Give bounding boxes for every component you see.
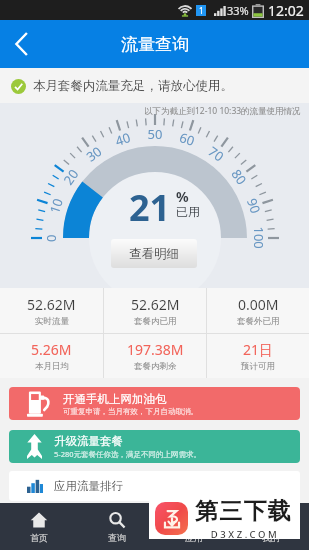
staticText: 升级流量套餐: [54, 434, 123, 448]
staticText: 21日: [243, 340, 274, 359]
staticText: 5-280元套餐任你选，满足不同的上网需求。: [54, 449, 202, 459]
staticText: 197.38M: [127, 340, 184, 359]
staticText: 套餐内已用: [134, 316, 177, 327]
staticText: 实时流量: [35, 316, 69, 327]
staticText: D3XZ.COM: [195, 528, 295, 539]
staticText: 流量查询: [121, 34, 189, 55]
staticText: 0.00M: [238, 295, 279, 314]
staticText: 应用: [185, 532, 203, 543]
staticText: 我的: [262, 532, 280, 543]
staticText: 12:02: [268, 1, 304, 20]
button[interactable]: Back: [0, 22, 44, 66]
staticText: 21: [129, 183, 171, 232]
staticText: 应用流量排行: [54, 479, 123, 493]
staticText: 33%: [227, 3, 249, 18]
button[interactable]: 应用流量排行: [9, 471, 300, 501]
button[interactable]: 首页: [0, 503, 78, 550]
button[interactable]: 查询: [78, 503, 155, 550]
staticText: %: [176, 187, 189, 206]
staticText: 已用: [176, 204, 200, 219]
staticText: 套餐外已用: [237, 316, 280, 327]
staticText: 5.26M: [31, 340, 72, 359]
staticText: 套餐内剩余: [134, 361, 177, 372]
staticText: 以下为截止到12-10 10:33的流量使用情况: [144, 105, 301, 117]
staticText: 52.62M: [131, 295, 180, 314]
staticText: 1: [199, 5, 204, 16]
button[interactable]: 0.00M: [207, 288, 309, 333]
button[interactable]: 开通手机上网加油包: [9, 387, 300, 420]
button[interactable]: 我的: [232, 503, 309, 550]
button[interactable]: 升级流量套餐: [9, 430, 300, 463]
staticText: 本月日均: [35, 361, 69, 372]
button[interactable]: 5.26M: [0, 334, 103, 378]
staticText: 本月套餐内流量充足，请放心使用。: [33, 78, 233, 94]
staticText: 可重复申请，当月有效，下月自动取消。: [63, 407, 198, 416]
button[interactable]: 21日: [207, 334, 309, 378]
button[interactable]: 应用: [155, 503, 232, 550]
staticText: 第三下载: [195, 497, 292, 526]
staticText: 首页: [30, 532, 48, 543]
button[interactable]: 查看明细: [111, 239, 197, 268]
staticText: 预计可用: [241, 361, 275, 372]
staticText: 查看明细: [129, 246, 179, 262]
staticText: 52.62M: [27, 295, 76, 314]
staticText: 查询: [108, 532, 126, 543]
button[interactable]: 52.62M: [104, 288, 206, 333]
button[interactable]: 52.62M: [0, 288, 103, 333]
button[interactable]: 197.38M: [104, 334, 206, 378]
staticText: 开通手机上网加油包: [63, 392, 167, 406]
